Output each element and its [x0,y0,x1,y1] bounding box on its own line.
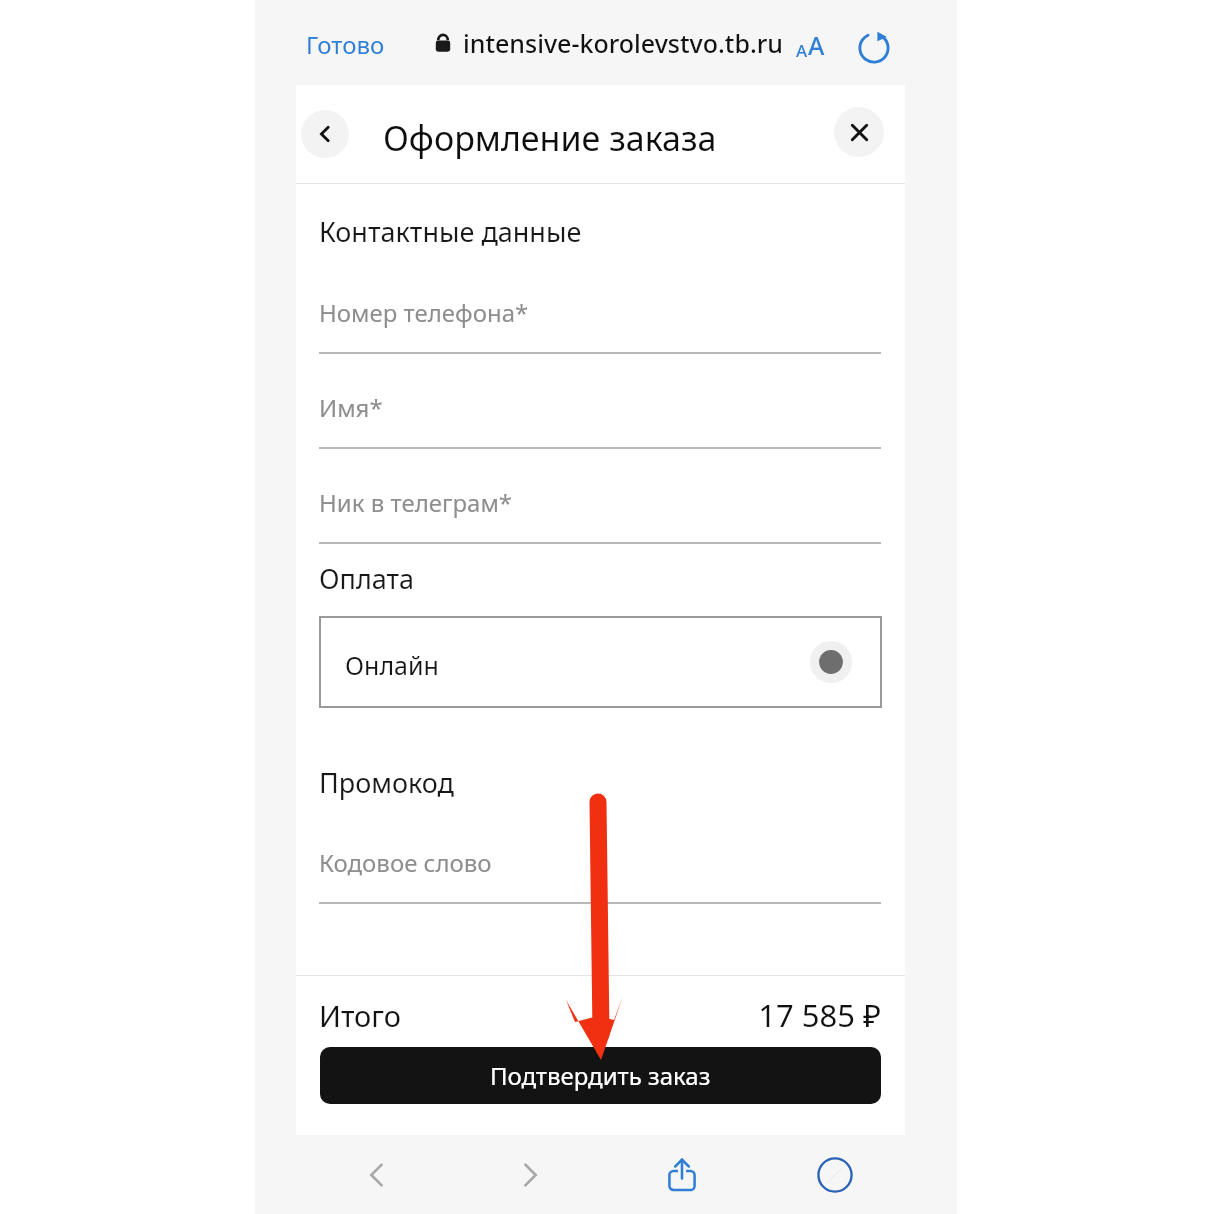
staticText: Промокод [319,764,454,801]
button[interactable]: Готово [300,22,391,67]
button[interactable]: Номер телефона* [319,296,881,354]
staticText: Имя* [319,391,383,424]
button[interactable]: intensive-korolevstvo.tb.ru [433,26,783,60]
staticText: A [796,39,808,62]
button[interactable]: Back [347,1145,407,1205]
button[interactable]: Close [834,107,884,157]
button[interactable]: Text size options [792,24,829,66]
button[interactable]: Tabs [805,1145,865,1205]
staticText: Ник в телеграм* [319,486,513,519]
button[interactable]: Back [301,110,349,158]
button[interactable]: Онлайн [320,617,881,707]
staticText: Итого [319,996,401,1035]
staticText: Подтвердить заказ [490,1059,711,1092]
staticText: Кодовое слово [319,846,492,879]
button[interactable]: Reload page [848,22,900,74]
button[interactable]: Имя* [319,391,881,449]
staticText: 17 585 ₽ [758,994,881,1036]
button[interactable]: Share [652,1145,712,1205]
button[interactable]: Подтвердить заказ [320,1047,881,1104]
button[interactable]: Ник в телеграм* [319,486,881,544]
staticText: intensive-korolevstvo.tb.ru [463,26,783,60]
staticText: Оформление заказа [383,115,717,161]
staticText: Оплата [319,560,415,597]
staticText: Номер телефона* [319,296,529,329]
button[interactable]: Кодовое слово [319,846,881,904]
staticText: Готово [306,28,385,61]
staticText: Онлайн [345,648,439,682]
button[interactable]: Forward [500,1145,560,1205]
staticText: A [808,28,825,62]
staticText: Контактные данные [319,213,582,250]
